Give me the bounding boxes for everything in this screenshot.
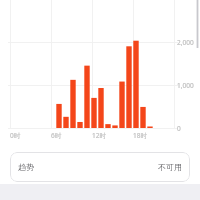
staticText: 1,000	[177, 81, 194, 90]
staticText: 0	[177, 124, 181, 133]
staticText: 0时	[10, 131, 21, 140]
staticText: 18时	[133, 131, 147, 140]
staticText: 12时	[92, 131, 106, 140]
staticText: 6时	[51, 131, 62, 140]
staticText: 不可用	[158, 162, 182, 172]
button[interactable]: 趋势	[10, 152, 190, 182]
staticText: 趋势	[18, 162, 34, 172]
staticText: 2,000	[177, 38, 194, 47]
